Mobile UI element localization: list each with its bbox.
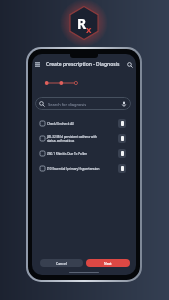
staticText: I10 Essential (primary) hypertension: [47, 167, 100, 171]
button[interactable]: Menu: [33, 60, 42, 69]
button[interactable]: Info: [118, 164, 126, 173]
button[interactable]: Info: [118, 119, 126, 128]
staticText: x: [86, 23, 92, 36]
button[interactable]: J45.32 Mild persistent asthma with: [40, 131, 126, 146]
staticText: Next: [104, 261, 112, 266]
staticText: Z60.1 Rhinitis Due To Pollen: [47, 152, 88, 156]
other: Voice search: [121, 101, 127, 107]
staticText: J45.32 Mild persistent asthma with: [47, 135, 97, 139]
staticText: status asthmaticus: [47, 139, 75, 143]
button[interactable]: I10 Essential (primary) hypertension: [40, 161, 126, 176]
staticText: R: [77, 14, 87, 33]
button[interactable]: Cancel: [40, 259, 83, 267]
button[interactable]: Info: [118, 149, 126, 158]
button[interactable]: Next: [86, 259, 130, 267]
staticText: Create prescription - Diagnosis: [46, 61, 120, 68]
button[interactable]: Check/Uncheck All: [40, 116, 126, 131]
staticText: Cancel: [56, 261, 67, 266]
button[interactable]: Info: [118, 134, 126, 143]
staticText: Search for diagnosis: [48, 102, 87, 107]
button[interactable]: Search: [125, 60, 134, 69]
staticText: Check/Uncheck All: [47, 122, 74, 126]
button[interactable]: Search for diagnosis: [35, 97, 131, 110]
button[interactable]: Z60.1 Rhinitis Due To Pollen: [40, 146, 126, 161]
